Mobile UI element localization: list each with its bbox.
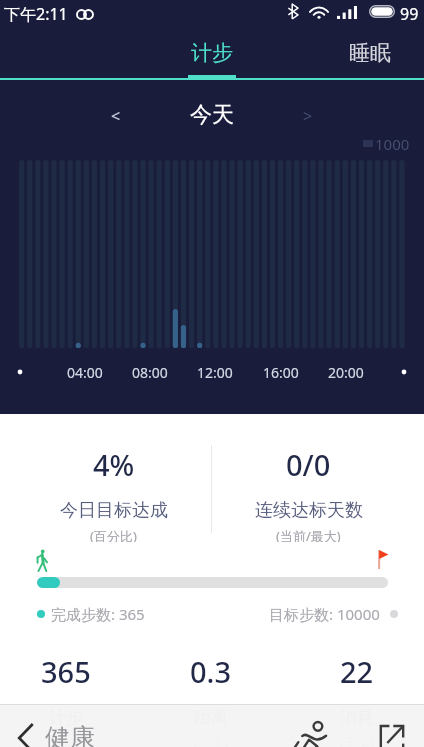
- staticText: 1000: [375, 134, 410, 154]
- button[interactable]: Workout: [288, 714, 330, 747]
- staticText: (百分比): [90, 527, 137, 542]
- staticText: 08:00: [132, 363, 168, 382]
- staticText: 4%: [93, 445, 135, 484]
- staticText: (步): [56, 734, 77, 747]
- staticText: 健康: [45, 722, 95, 747]
- staticText: 睡眠: [349, 40, 391, 66]
- button[interactable]: 睡眠: [299, 28, 424, 78]
- staticText: 16:00: [263, 363, 299, 382]
- button[interactable]: Previous day: [100, 100, 132, 132]
- staticText: (当前/最大): [276, 527, 341, 542]
- staticText: 今日目标达成: [60, 499, 168, 522]
- button[interactable]: [37, 577, 388, 588]
- staticText: 20:00: [328, 363, 364, 382]
- staticText: >: [303, 105, 313, 127]
- staticText: <: [111, 105, 121, 127]
- staticText: 今天: [190, 101, 234, 129]
- staticText: 99: [400, 3, 419, 25]
- button[interactable]: Back: [12, 716, 40, 747]
- button[interactable]: 计步: [141, 28, 283, 78]
- staticText: 完成步数: 365: [51, 604, 145, 624]
- button[interactable]: 365: [6, 634, 126, 747]
- staticText: 目标步数: 10000: [269, 604, 380, 624]
- staticText: 12:00: [197, 363, 233, 382]
- button[interactable]: Next day: [292, 100, 324, 132]
- staticText: 下午2:11: [4, 3, 68, 25]
- staticText: 04:00: [67, 363, 103, 382]
- staticText: 计步: [191, 40, 233, 66]
- staticText: 连续达标天数: [255, 499, 363, 522]
- button[interactable]: Full screen: [375, 719, 409, 747]
- button[interactable]: 22: [297, 634, 417, 747]
- staticText: 22: [340, 652, 374, 691]
- staticText: 0/0: [286, 445, 331, 484]
- staticText: 0.3: [190, 652, 232, 691]
- staticText: 计步: [49, 707, 83, 728]
- staticText: 365: [41, 652, 91, 691]
- button[interactable]: 0.3: [151, 634, 271, 747]
